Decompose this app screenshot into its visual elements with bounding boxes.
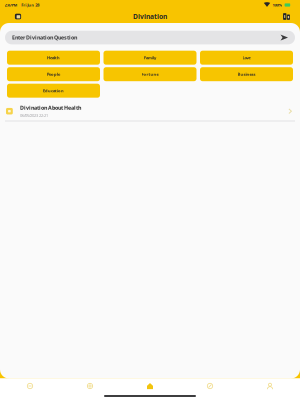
button[interactable]: Family	[103, 51, 196, 65]
button[interactable]: Chat	[0, 378, 60, 393]
button[interactable]: Health	[7, 51, 100, 65]
button[interactable]: People	[7, 67, 100, 81]
button[interactable]: Divination About Health	[0, 102, 300, 121]
staticText: Divination About Health	[20, 104, 81, 111]
staticText: Fri Jun 28	[21, 2, 39, 8]
staticText: Business	[237, 71, 255, 77]
staticText: 100%	[272, 2, 282, 8]
button[interactable]: Business	[200, 67, 293, 81]
staticText: Love	[242, 55, 250, 60]
button[interactable]: New reading	[10, 10, 26, 23]
staticText: Health	[47, 55, 60, 60]
button[interactable]: Fortune	[103, 67, 196, 81]
button[interactable]: Education	[7, 84, 100, 98]
button[interactable]: Compass	[180, 378, 240, 393]
staticText: Family	[144, 55, 156, 60]
button[interactable]: Enter Divination Question	[5, 31, 295, 44]
button[interactable]: Explore	[60, 378, 120, 393]
button[interactable]: Love	[200, 51, 293, 65]
button[interactable]: Home	[120, 378, 180, 393]
staticText: 06/05/2023 22:21	[20, 113, 48, 118]
staticText: People	[47, 71, 60, 77]
button[interactable]: Library	[278, 10, 294, 23]
staticText: Divination	[133, 12, 167, 21]
staticText: Fortune	[141, 71, 158, 77]
staticText: Enter Divination Question	[12, 34, 77, 41]
staticText: Education	[43, 88, 64, 93]
button[interactable]: Profile	[240, 378, 300, 393]
staticText: 2:47PM	[5, 2, 18, 8]
